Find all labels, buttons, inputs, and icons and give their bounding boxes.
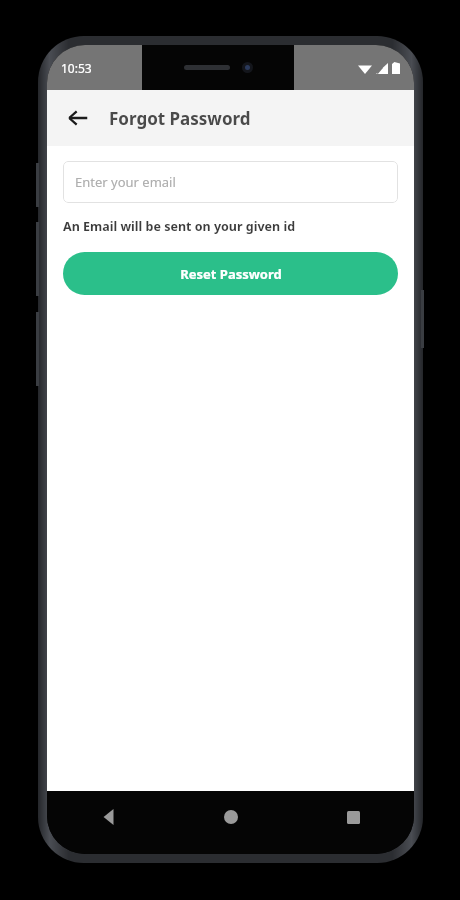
staticText: Reset Password xyxy=(180,265,282,283)
button[interactable]: Enter your email xyxy=(63,161,398,203)
button[interactable]: Recents xyxy=(292,799,414,847)
staticText: Forgot Password xyxy=(109,107,251,130)
button[interactable]: Reset Password xyxy=(63,252,398,295)
staticText: Enter your email xyxy=(75,173,176,191)
button[interactable]: Back xyxy=(47,799,170,847)
staticText: An Email will be sent on your given id xyxy=(63,218,296,235)
button[interactable]: Home xyxy=(170,799,292,847)
button[interactable]: Back xyxy=(57,97,99,139)
staticText: 10:53 xyxy=(61,60,92,76)
